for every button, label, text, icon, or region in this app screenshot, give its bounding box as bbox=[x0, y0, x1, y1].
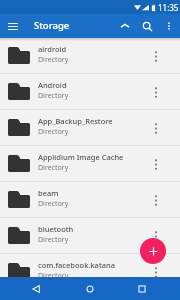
button[interactable]: Applidium Image Cache bbox=[0, 146, 180, 181]
staticText: Android bbox=[38, 80, 67, 90]
staticText: Applidium Image Cache bbox=[38, 152, 124, 162]
button[interactable]: Item options bbox=[144, 80, 168, 104]
staticText: Directory bbox=[38, 199, 69, 209]
button[interactable]: Item options bbox=[144, 188, 168, 212]
button[interactable]: airdroid bbox=[0, 38, 180, 73]
staticText: Directory bbox=[38, 163, 69, 173]
staticText: 11:35 bbox=[158, 2, 179, 13]
staticText: Directory bbox=[38, 91, 69, 101]
button[interactable]: beam bbox=[0, 182, 180, 217]
button[interactable]: More options bbox=[158, 15, 180, 37]
button[interactable]: Item options bbox=[144, 260, 168, 284]
staticText: beam bbox=[38, 188, 59, 198]
button[interactable]: Search bbox=[136, 15, 158, 37]
staticText: com.facebook.katana bbox=[38, 260, 116, 270]
staticText: airdroid bbox=[38, 44, 67, 54]
button[interactable]: com.facebook.katana bbox=[0, 254, 180, 289]
button[interactable]: Menu bbox=[8, 18, 18, 34]
button[interactable]: Add bbox=[140, 238, 166, 264]
button[interactable]: Android bbox=[0, 74, 180, 109]
button[interactable]: Item options bbox=[144, 152, 168, 176]
staticText: Storage bbox=[34, 19, 70, 32]
button[interactable]: Item options bbox=[144, 116, 168, 140]
button[interactable]: App_Backup_Restore bbox=[0, 110, 180, 145]
staticText: App_Backup_Restore bbox=[38, 116, 113, 126]
button[interactable]: Recents bbox=[131, 278, 153, 300]
button[interactable]: Back bbox=[25, 278, 47, 300]
button[interactable]: Item options bbox=[144, 44, 168, 68]
staticText: Directory bbox=[38, 271, 69, 281]
button[interactable]: bluetooth bbox=[0, 218, 180, 253]
staticText: Directory bbox=[38, 235, 69, 245]
button[interactable]: Home bbox=[79, 278, 101, 300]
button[interactable]: Collapse bbox=[114, 15, 136, 37]
staticText: bluetooth bbox=[38, 224, 74, 234]
staticText: Directory bbox=[38, 127, 69, 137]
button[interactable]: Item options bbox=[144, 224, 168, 248]
staticText: Directory bbox=[38, 55, 69, 65]
